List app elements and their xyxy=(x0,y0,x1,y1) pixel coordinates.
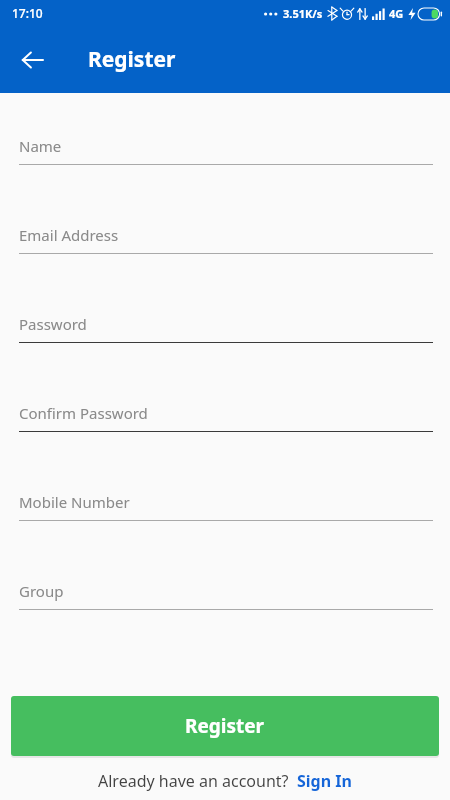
staticText: Confirm Password xyxy=(19,403,148,423)
staticText: Mobile Number xyxy=(19,492,130,512)
staticText: Already have an account? xyxy=(98,770,289,792)
button[interactable]: Name xyxy=(0,126,450,215)
staticText: Group xyxy=(19,581,64,601)
button[interactable]: Sign In xyxy=(297,770,352,792)
button[interactable]: Group xyxy=(0,571,450,660)
staticText: Sign In xyxy=(297,770,352,792)
button[interactable]: Mobile Number xyxy=(0,482,450,571)
button[interactable]: Confirm Password xyxy=(0,393,450,482)
staticText: Password xyxy=(19,314,87,334)
staticText: Register xyxy=(185,713,265,739)
button[interactable]: Back xyxy=(10,38,54,82)
staticText: Name xyxy=(19,136,62,156)
staticText: 17:10 xyxy=(12,5,43,21)
staticText: 3.51K/s xyxy=(283,6,323,21)
button[interactable]: Register xyxy=(11,696,439,756)
staticText: Email Address xyxy=(19,225,119,245)
button[interactable]: Email Address xyxy=(0,215,450,304)
staticText: 4G xyxy=(389,6,404,21)
button[interactable]: Password xyxy=(0,304,450,393)
staticText: Register xyxy=(88,45,176,74)
